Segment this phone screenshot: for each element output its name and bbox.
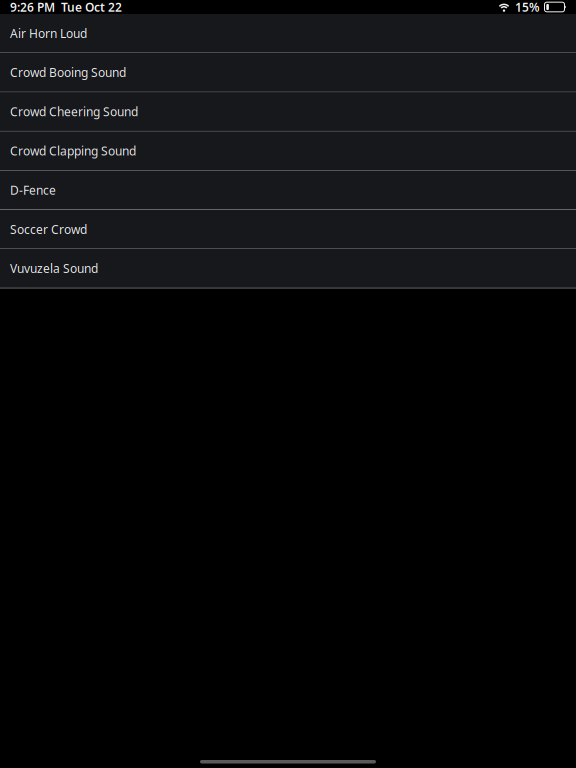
staticText: D-Fence xyxy=(10,182,56,198)
staticText: 15% xyxy=(515,0,540,15)
staticText: Vuvuzela Sound xyxy=(10,260,98,276)
staticText: Air Horn Loud xyxy=(10,25,87,41)
staticText: Crowd Cheering Sound xyxy=(10,104,138,120)
button[interactable]: Soccer Crowd xyxy=(0,210,576,249)
staticText: Crowd Booing Sound xyxy=(10,64,126,80)
button[interactable]: D-Fence xyxy=(0,171,576,210)
button[interactable]: Crowd Clapping Sound xyxy=(0,132,576,171)
button[interactable]: Crowd Booing Sound xyxy=(0,53,576,92)
button[interactable]: Vuvuzela Sound xyxy=(0,249,576,288)
staticText: Crowd Clapping Sound xyxy=(10,143,136,159)
staticText: Soccer Crowd xyxy=(10,221,87,237)
staticText: Tue Oct 22 xyxy=(55,0,122,15)
button[interactable]: Air Horn Loud xyxy=(0,14,576,53)
button[interactable]: Crowd Cheering Sound xyxy=(0,92,576,132)
staticText: 9:26 PM xyxy=(10,0,55,15)
